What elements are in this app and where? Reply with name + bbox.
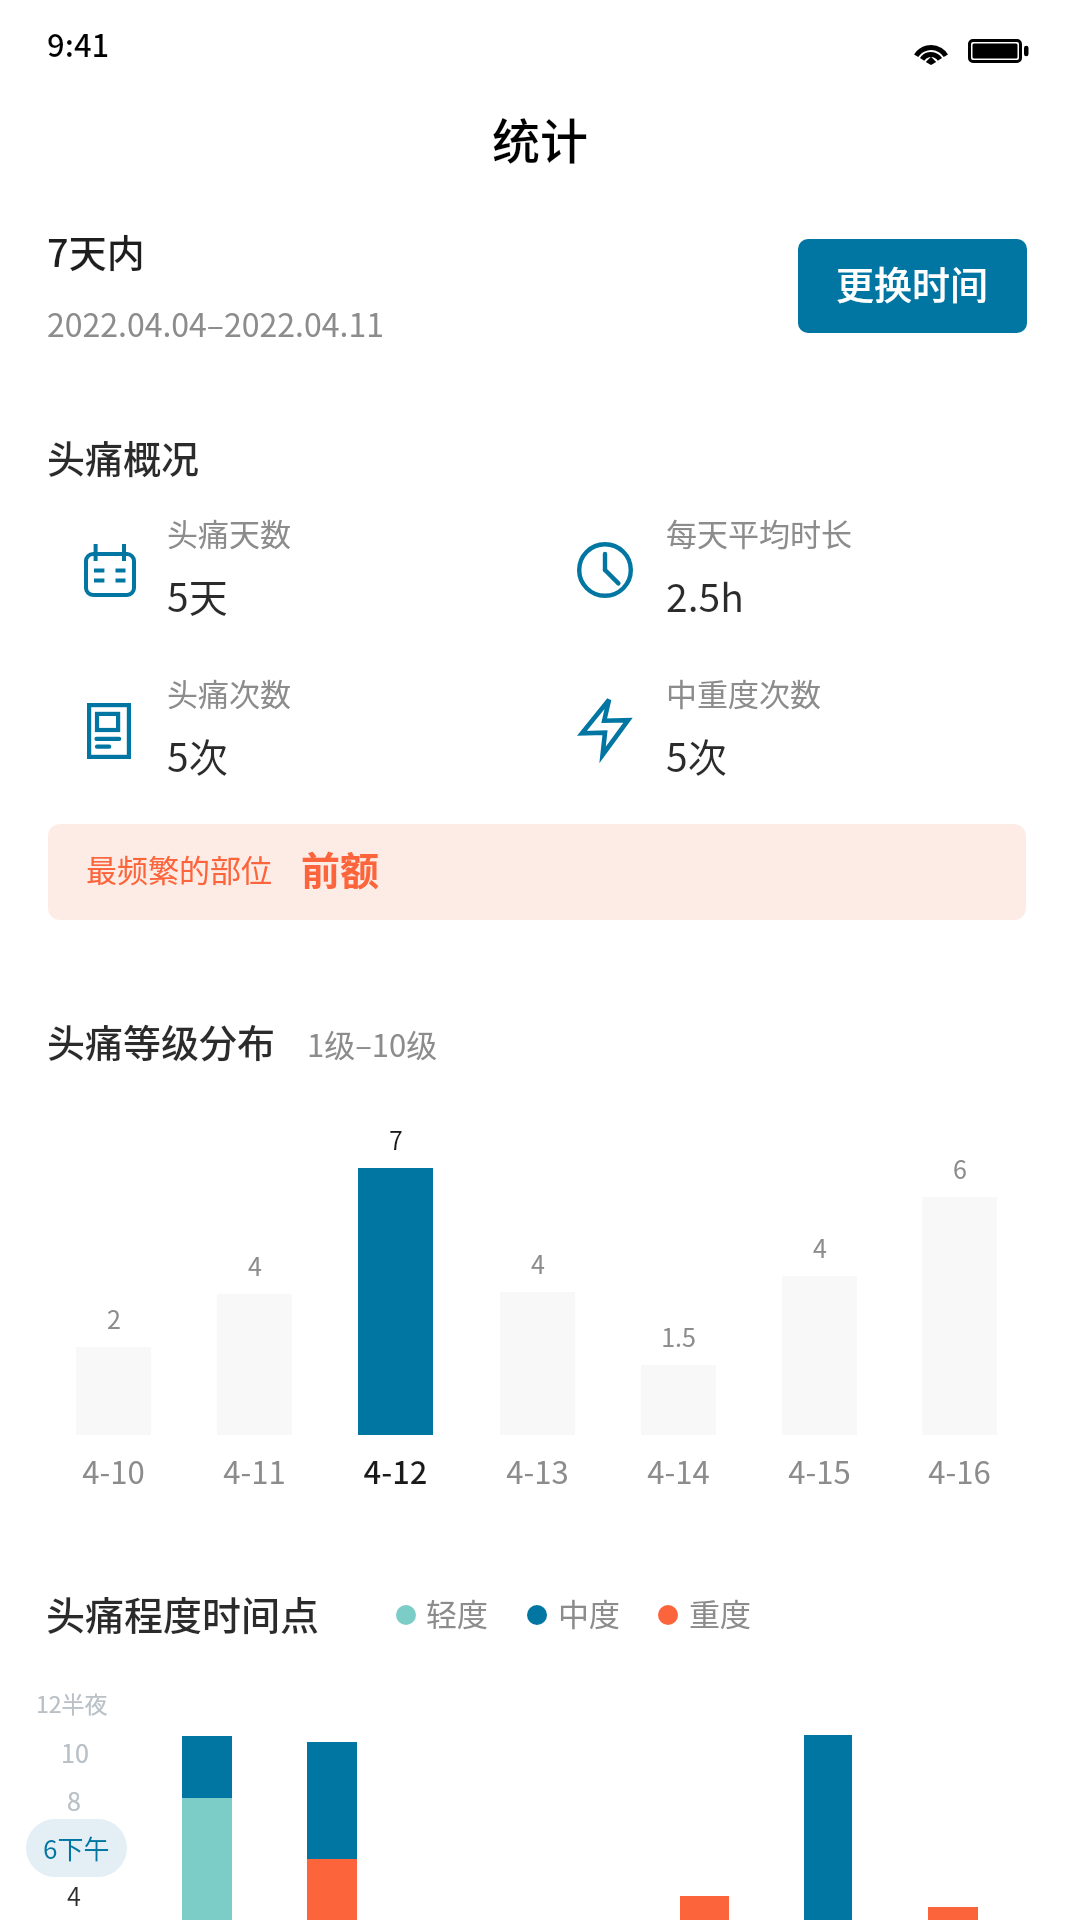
staticText: 更换时间 xyxy=(836,255,989,310)
staticText: 4-11 xyxy=(223,1448,286,1493)
staticText: 头痛次数 xyxy=(167,670,291,715)
staticText: 6 xyxy=(953,1150,967,1186)
staticText: 2 xyxy=(107,1300,121,1336)
staticText: 4-10 xyxy=(82,1448,145,1493)
staticText: 每天平均时长 xyxy=(666,510,852,555)
button[interactable]: 4 xyxy=(486,1244,589,1490)
staticText: 2.5h xyxy=(666,567,744,623)
staticText: 4-16 xyxy=(928,1448,991,1493)
staticText: 5次 xyxy=(167,727,228,783)
other: Wi-Fi signal xyxy=(911,35,951,65)
staticText: 统计 xyxy=(492,103,589,173)
staticText: 4-14 xyxy=(647,1448,710,1493)
staticText: 12半夜 xyxy=(36,1686,108,1719)
staticText: 前额 xyxy=(301,840,380,896)
button[interactable]: 头痛次数 xyxy=(63,658,503,776)
staticText: 5天 xyxy=(167,567,228,623)
button[interactable]: 轻度 xyxy=(392,1588,507,1644)
button[interactable]: 最频繁的部位 xyxy=(48,824,1026,920)
staticText: 1.5 xyxy=(661,1318,696,1354)
staticText: 头痛等级分布 xyxy=(47,1013,276,1068)
button[interactable]: 更换时间 xyxy=(798,239,1027,333)
staticText: 4-15 xyxy=(788,1448,851,1493)
button[interactable]: 4 xyxy=(203,1246,306,1490)
staticText: 4 xyxy=(813,1229,827,1265)
staticText: 5次 xyxy=(666,727,727,783)
staticText: 1级–10级 xyxy=(307,1021,438,1066)
staticText: 4 xyxy=(248,1247,262,1283)
other: Battery full xyxy=(968,39,1028,63)
staticText: 8 xyxy=(67,1782,81,1818)
button[interactable]: 每天平均时长 xyxy=(553,498,993,616)
staticText: 4-12 xyxy=(363,1448,428,1493)
button[interactable]: 2 xyxy=(62,1299,165,1490)
staticText: 10 xyxy=(61,1734,89,1770)
staticText: 2022.04.04–2022.04.11 xyxy=(47,300,384,346)
staticText: 4 xyxy=(67,1877,81,1913)
staticText: 头痛天数 xyxy=(167,510,291,555)
staticText: 最频繁的部位 xyxy=(86,846,272,891)
staticText: 头痛概况 xyxy=(47,429,200,484)
staticText: 6下午 xyxy=(43,1829,110,1867)
button[interactable]: 重度 xyxy=(654,1588,769,1644)
button[interactable]: 6 xyxy=(908,1149,1011,1490)
staticText: 轻度 xyxy=(426,1590,488,1635)
button[interactable]: 1.5 xyxy=(627,1317,730,1490)
staticText: 9:41 xyxy=(47,21,110,66)
staticText: 中度 xyxy=(558,1590,620,1635)
staticText: 4-13 xyxy=(506,1448,569,1493)
button[interactable]: 头痛天数 xyxy=(60,498,500,616)
button[interactable]: 4 xyxy=(768,1228,871,1490)
button[interactable]: 7 xyxy=(344,1120,447,1490)
staticText: 重度 xyxy=(689,1590,751,1635)
button[interactable]: 6下午 xyxy=(26,1819,127,1877)
staticText: 头痛程度时间点 xyxy=(46,1585,320,1641)
staticText: 7天内 xyxy=(47,223,145,278)
button[interactable]: 中度 xyxy=(523,1588,638,1644)
staticText: 中重度次数 xyxy=(666,670,821,715)
staticText: 4 xyxy=(531,1245,545,1281)
button[interactable]: 中重度次数 xyxy=(554,658,994,776)
staticText: 7 xyxy=(389,1121,403,1157)
